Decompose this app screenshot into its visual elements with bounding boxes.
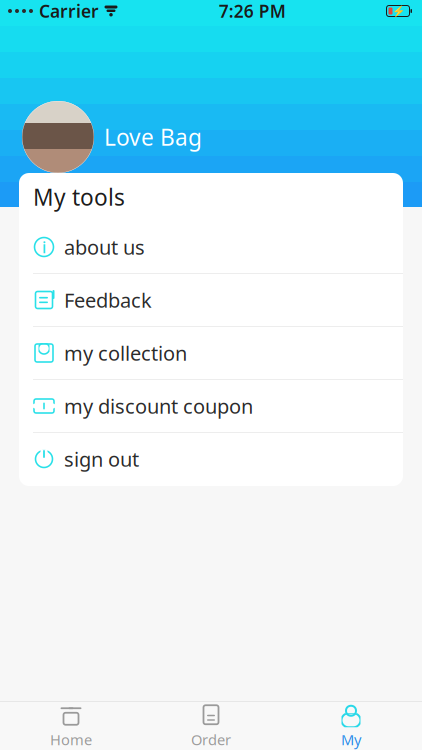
button[interactable]: My bbox=[281, 702, 421, 750]
staticText: i bbox=[42, 236, 46, 258]
button[interactable]: Order bbox=[141, 702, 281, 750]
staticText: My tools bbox=[33, 182, 125, 212]
staticText: my collection bbox=[64, 340, 187, 366]
button[interactable]: i bbox=[19, 221, 403, 274]
staticText: Order bbox=[191, 730, 231, 749]
button[interactable]: Feedback bbox=[19, 274, 403, 327]
staticText: My bbox=[341, 730, 361, 749]
button[interactable]: sign out bbox=[19, 433, 403, 486]
staticText: sign out bbox=[64, 446, 139, 472]
staticText: Home bbox=[50, 730, 92, 749]
staticText: ⚡ bbox=[391, 5, 404, 17]
button[interactable]: my discount coupon bbox=[19, 380, 403, 433]
staticText: Carrier bbox=[39, 0, 99, 22]
staticText: about us bbox=[64, 234, 145, 260]
staticText: my discount coupon bbox=[64, 393, 253, 419]
staticText: Feedback bbox=[64, 287, 152, 313]
staticText: Love Bag bbox=[104, 122, 202, 152]
button[interactable]: Home bbox=[1, 702, 141, 750]
staticText: 7:26 PM bbox=[219, 0, 286, 22]
button[interactable]: my collection bbox=[19, 327, 403, 380]
